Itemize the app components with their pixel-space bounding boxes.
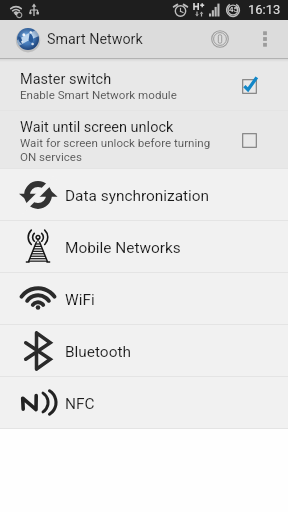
staticText: Data synchronization bbox=[65, 187, 210, 205]
staticText: Bluetooth bbox=[65, 343, 131, 361]
staticText: NFC bbox=[65, 395, 95, 413]
staticText: Master switch bbox=[20, 71, 112, 88]
button[interactable]: Master switch bbox=[0, 62, 288, 110]
staticText: 16:13 bbox=[248, 2, 281, 17]
button[interactable]: Unchecked bbox=[229, 111, 268, 168]
button[interactable]: More options bbox=[242, 20, 288, 58]
button[interactable]: Smart Network bbox=[0, 27, 149, 51]
staticText: WiFi bbox=[65, 291, 95, 309]
staticText: Smart Network bbox=[47, 31, 143, 48]
button[interactable]: Data synchronization bbox=[0, 169, 288, 220]
button[interactable]: NFC bbox=[0, 377, 288, 428]
staticText: Enable Smart Network module bbox=[20, 88, 177, 102]
button[interactable]: Info bbox=[198, 20, 242, 58]
button[interactable]: Checked bbox=[229, 62, 268, 110]
button[interactable]: Bluetooth bbox=[0, 325, 288, 376]
staticText: 45 bbox=[229, 5, 238, 14]
staticText: Wait until screen unlock bbox=[20, 119, 174, 136]
staticText: Mobile Networks bbox=[65, 239, 181, 257]
button[interactable]: WiFi bbox=[0, 273, 288, 324]
button[interactable]: Wait until screen unlock bbox=[0, 111, 288, 168]
button[interactable]: Mobile Networks bbox=[0, 221, 288, 272]
staticText: Wait for screen unlock before turning bbox=[20, 136, 211, 150]
staticText: ON services bbox=[20, 150, 82, 164]
